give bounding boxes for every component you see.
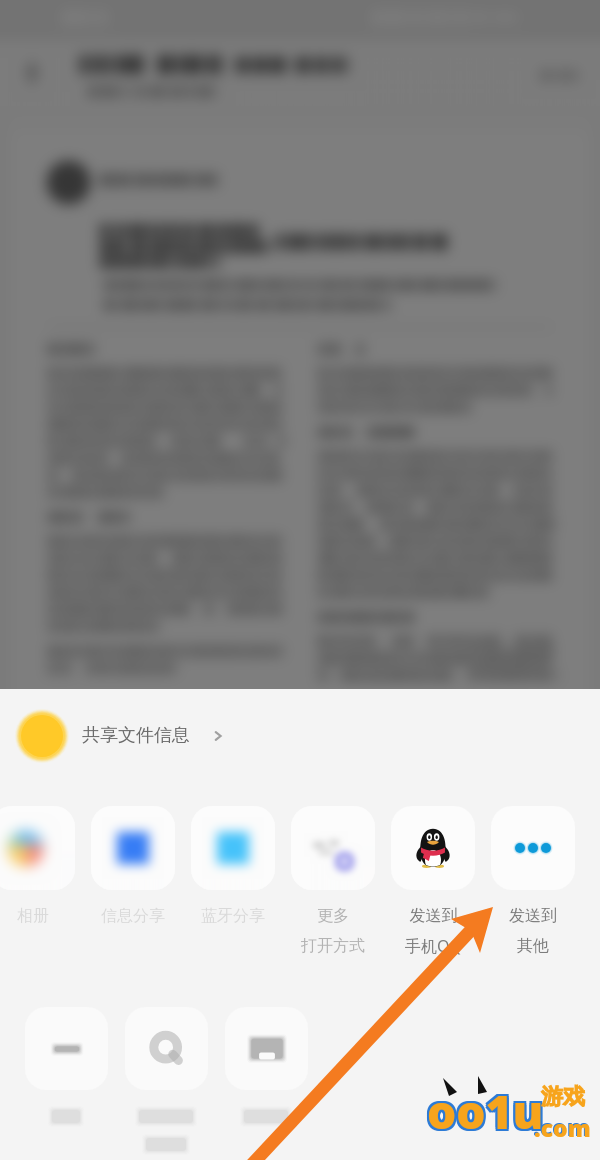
staticText: 更多 打开方式 [301,906,365,955]
staticText: oo1u [429,1082,546,1145]
staticText: oo1u [429,1080,546,1143]
button[interactable]: 发送到 其他 [483,806,583,955]
button[interactable]: Open with Gallery [0,806,83,926]
button[interactable]: 更多 打开方式 [283,806,383,955]
staticText: 游戏 [541,1083,585,1111]
staticText: 发送到 其他 [509,906,557,955]
staticText: oo1u [425,1080,542,1143]
button[interactable]: Collapse [16,1007,116,1158]
staticText: oo1u [427,1078,544,1141]
staticText: 共享文件信息 [82,724,190,747]
button[interactable]: Search [116,1007,216,1158]
staticText: 发送到 手机QQ [405,906,462,957]
button[interactable]: Open with Messages [83,806,183,926]
button[interactable]: Open with Bluetooth [183,806,283,926]
staticText: oo1u [425,1078,542,1141]
staticText: 相册 [17,906,49,926]
button[interactable]: Print [216,1007,316,1158]
button[interactable]: 共享文件信息 [0,689,600,782]
staticText: oo1u [427,1082,544,1145]
button[interactable]: 发送到 手机QQ [383,806,483,957]
other: File details [210,728,226,744]
staticText: oo1u [427,1080,544,1143]
staticText: oo1u [429,1078,546,1141]
staticText: 信息分享 [101,906,165,926]
staticText: .com [533,1111,590,1142]
staticText: oo1u [425,1082,542,1145]
staticText: .com [534,1112,591,1143]
staticText: 蓝牙分享 [201,906,265,926]
